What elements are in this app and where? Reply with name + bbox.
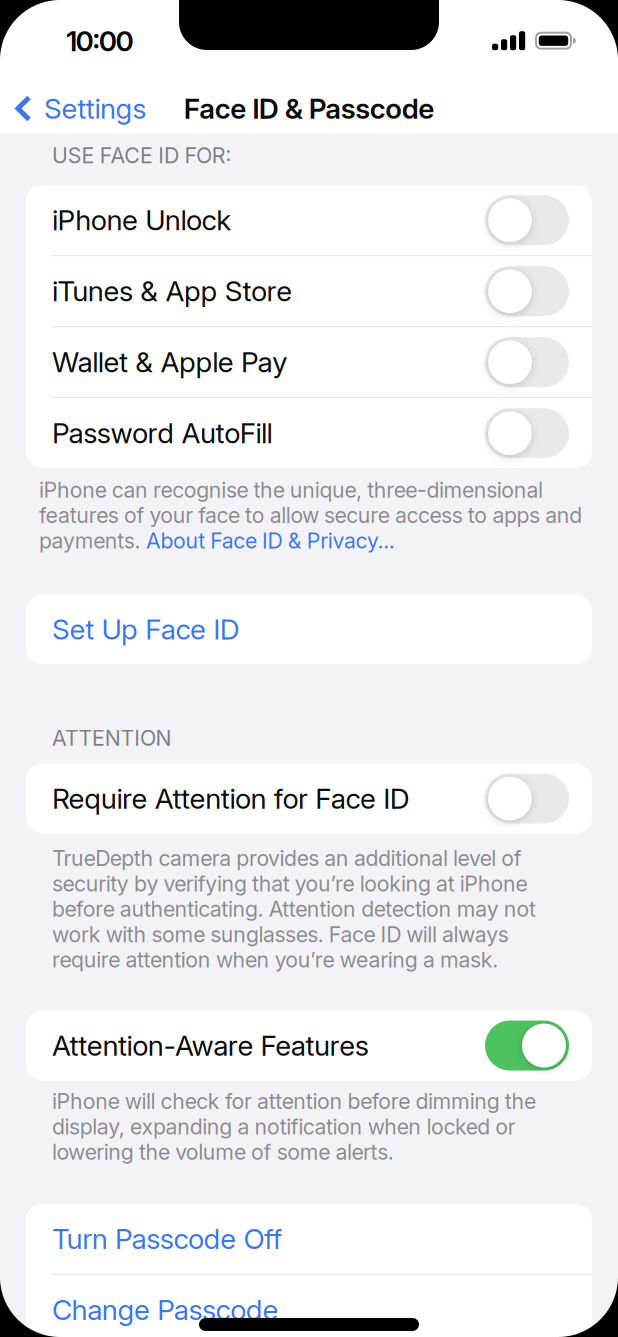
button[interactable]: Wallet & Apple Pay — [485, 337, 569, 387]
staticText: Settings — [44, 92, 146, 125]
staticText: iTunes & App Store — [52, 275, 292, 308]
staticText: security by verifying that you’re lookin… — [52, 871, 527, 896]
staticText: display, expanding a notification when l… — [52, 1114, 516, 1139]
staticText: Set Up Face ID — [52, 613, 240, 646]
button[interactable]: Password AutoFill — [485, 408, 569, 458]
button[interactable]: Back to Settings — [0, 92, 146, 125]
staticText: USE FACE ID FOR: — [52, 143, 231, 168]
button[interactable]: About Face ID & Privacy... — [146, 528, 395, 553]
staticText: lowering the volume of some alerts. — [52, 1139, 394, 1165]
button[interactable]: Set Up Face ID — [26, 594, 592, 664]
staticText: 10:00 — [66, 24, 133, 57]
staticText: iPhone will check for attention before d… — [52, 1089, 536, 1114]
staticText: Change Passcode — [52, 1293, 278, 1326]
staticText: Face ID & Passcode — [184, 92, 434, 125]
staticText: Password AutoFill — [52, 417, 273, 450]
button[interactable]: Attention-Aware Features — [485, 1020, 569, 1070]
staticText: payments. — [39, 528, 146, 553]
button[interactable]: Change Passcode — [26, 1275, 592, 1337]
staticText: ATTENTION — [52, 725, 172, 751]
staticText: features of your face to allow secure ac… — [39, 503, 582, 528]
staticText: iPhone Unlock — [52, 204, 231, 237]
staticText: before authenticating. Attention detecti… — [52, 896, 536, 922]
staticText: iPhone can recognise the unique, three-d… — [39, 477, 543, 502]
button[interactable]: Require Attention for Face ID — [485, 773, 569, 823]
staticText: Wallet & Apple Pay — [52, 346, 287, 379]
staticText: TrueDepth camera provides an additional … — [52, 846, 522, 871]
staticText: require attention when you’re wearing a … — [52, 947, 498, 972]
staticText: Attention-Aware Features — [52, 1029, 369, 1062]
staticText: Turn Passcode Off — [52, 1222, 283, 1255]
staticText: About Face ID & Privacy... — [146, 528, 395, 553]
staticText: work with some sunglasses. Face ID will … — [52, 922, 509, 947]
button[interactable]: iTunes & App Store — [485, 266, 569, 316]
button[interactable]: Turn Passcode Off — [26, 1204, 592, 1274]
button[interactable]: iPhone Unlock — [485, 195, 569, 245]
staticText: Require Attention for Face ID — [52, 782, 410, 815]
